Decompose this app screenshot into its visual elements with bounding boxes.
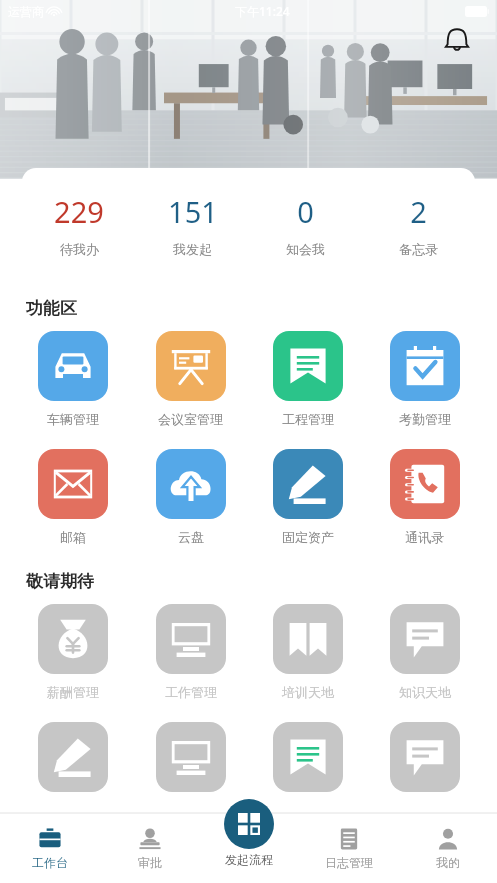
- staticText: 229: [54, 192, 104, 231]
- staticText: 2: [410, 192, 427, 231]
- staticText: 知识天地: [399, 684, 451, 700]
- button[interactable]: 151: [136, 168, 249, 280]
- staticText: 薪酬管理: [47, 684, 99, 700]
- button[interactable]: [14, 722, 132, 792]
- button[interactable]: 我的: [398, 813, 497, 883]
- staticText: 通讯录: [405, 529, 444, 545]
- staticText: 我的: [436, 855, 460, 870]
- button[interactable]: 知识天地: [366, 604, 483, 700]
- staticText: 下午11:24: [235, 3, 290, 19]
- staticText: 151: [168, 192, 218, 231]
- button[interactable]: 邮箱: [14, 449, 132, 545]
- staticText: 车辆管理: [47, 411, 99, 427]
- button[interactable]: 工作台: [0, 813, 100, 883]
- staticText: 云盘: [178, 529, 204, 545]
- staticText: 会议室管理: [158, 411, 223, 427]
- button[interactable]: 考勤管理: [366, 331, 483, 427]
- staticText: 知会我: [286, 241, 325, 257]
- staticText: 工作台: [32, 855, 68, 870]
- staticText: 运营商: [8, 4, 44, 19]
- staticText: 考勤管理: [399, 411, 451, 427]
- staticText: 固定资产: [282, 529, 334, 545]
- button[interactable]: 发起流程: [224, 799, 274, 867]
- staticText: 审批: [138, 855, 162, 870]
- staticText: 发起流程: [225, 852, 273, 867]
- button[interactable]: 通讯录: [366, 449, 483, 545]
- staticText: 我发起: [173, 241, 212, 257]
- button[interactable]: 工程管理: [249, 331, 366, 427]
- staticText: 邮箱: [60, 529, 86, 545]
- staticText: 备忘录: [399, 241, 438, 257]
- staticText: 0: [297, 192, 314, 231]
- button[interactable]: 会议室管理: [132, 331, 249, 427]
- button[interactable]: 工作管理: [132, 604, 249, 700]
- staticText: 待我办: [60, 241, 99, 257]
- button[interactable]: Notifications: [439, 22, 475, 58]
- button[interactable]: 薪酬管理: [14, 604, 132, 700]
- button[interactable]: 日志管理: [299, 813, 398, 883]
- button[interactable]: 0: [249, 168, 362, 280]
- button[interactable]: 229: [22, 168, 136, 280]
- staticText: 日志管理: [325, 855, 373, 870]
- button[interactable]: [132, 722, 249, 792]
- button[interactable]: 2: [362, 168, 475, 280]
- staticText: 工作管理: [165, 684, 217, 700]
- button[interactable]: 车辆管理: [14, 331, 132, 427]
- staticText: 培训天地: [282, 684, 334, 700]
- button[interactable]: 云盘: [132, 449, 249, 545]
- button[interactable]: 培训天地: [249, 604, 366, 700]
- staticText: 敬请期待: [26, 571, 94, 592]
- button[interactable]: [249, 722, 366, 792]
- button[interactable]: 固定资产: [249, 449, 366, 545]
- button[interactable]: 审批: [100, 813, 200, 883]
- staticText: 功能区: [26, 298, 77, 319]
- button[interactable]: [366, 722, 483, 792]
- staticText: 工程管理: [282, 411, 334, 427]
